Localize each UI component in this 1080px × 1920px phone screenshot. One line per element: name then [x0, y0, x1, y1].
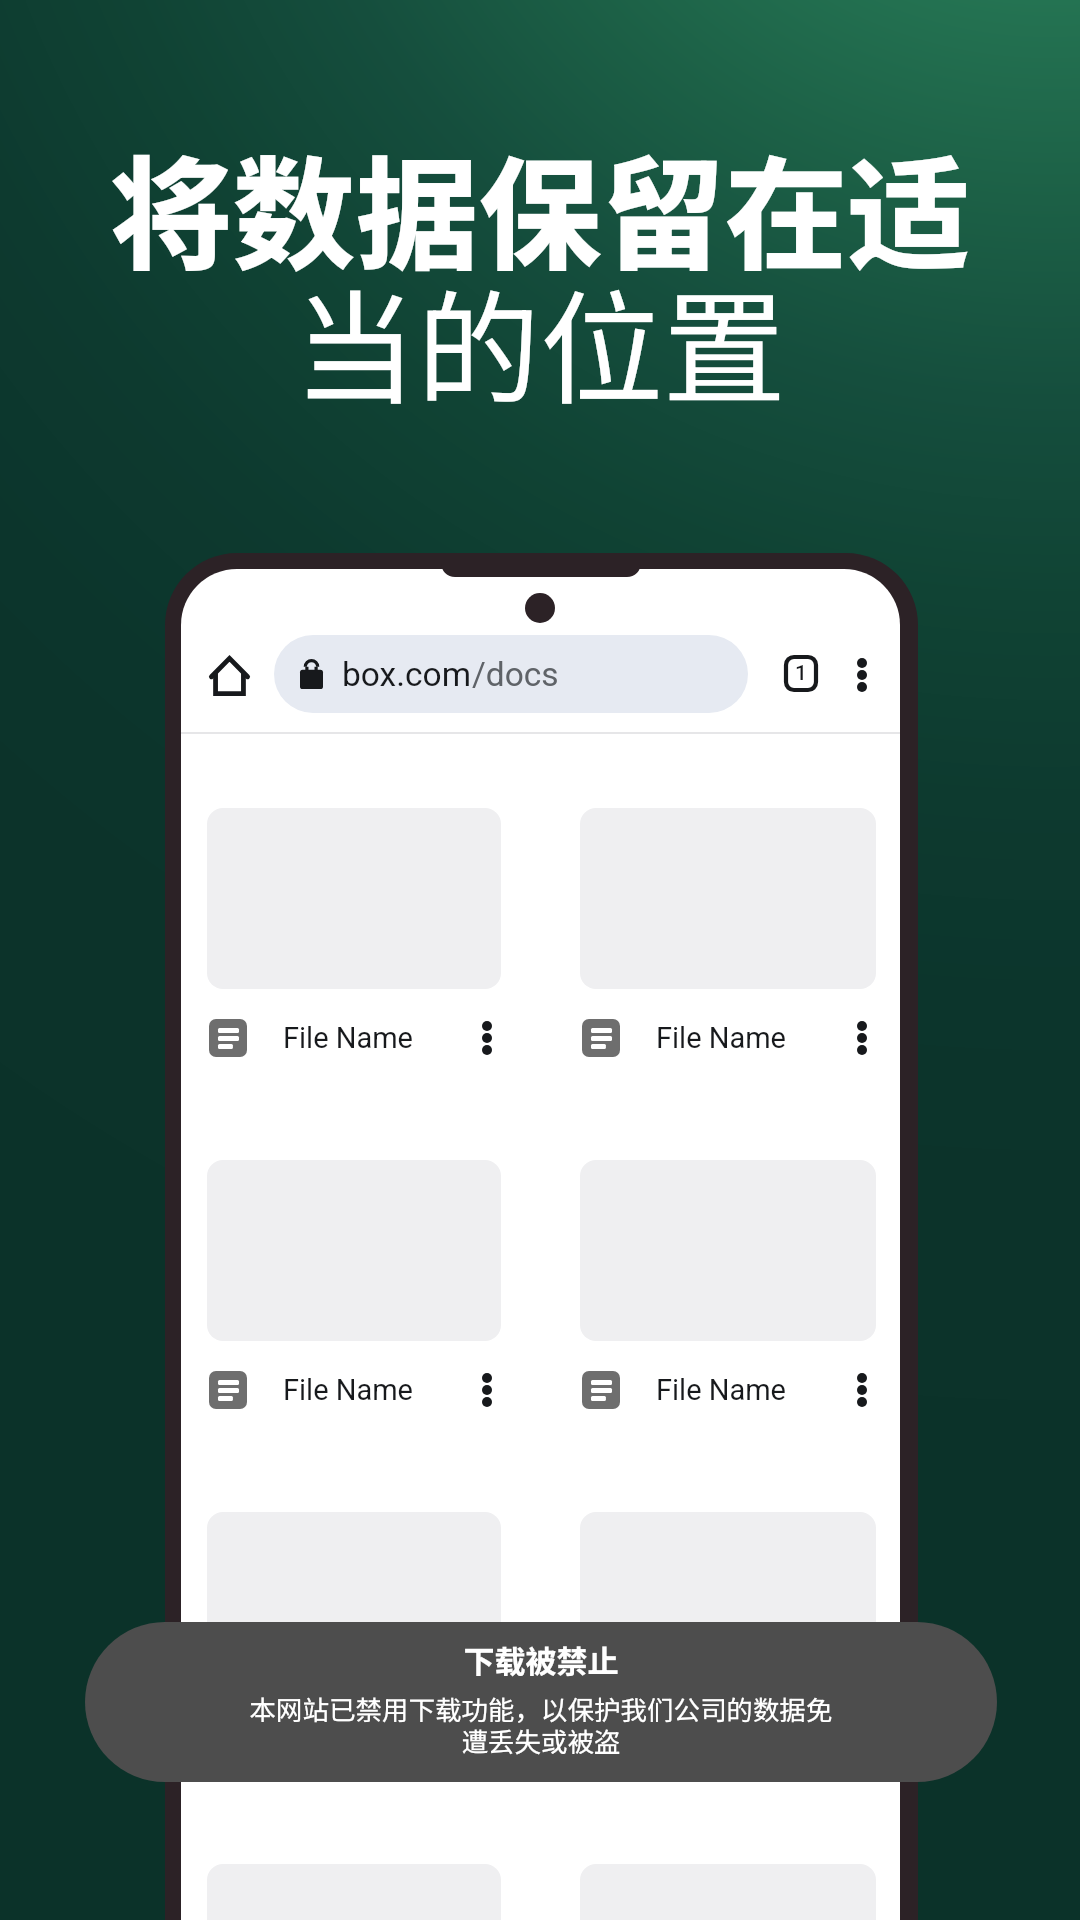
button[interactable]: File Name	[580, 808, 876, 1058]
button[interactable]: File Name	[207, 808, 501, 1058]
button[interactable]: File options	[842, 1018, 882, 1058]
button[interactable]: More options	[832, 645, 892, 705]
staticText: box.com	[342, 655, 472, 694]
staticText: /docs	[472, 655, 559, 694]
button[interactable]: File options	[467, 1018, 507, 1058]
staticText: 本网站已禁用下载功能，以保护我们公司的数据免 遭丢失或被盗	[85, 1689, 997, 1760]
staticText: File Name	[283, 1021, 413, 1055]
button[interactable]: 下载被禁止	[85, 1622, 997, 1782]
button[interactable]: File options	[467, 1722, 507, 1762]
staticText: File Name	[656, 1021, 786, 1055]
button[interactable]: Tabs	[771, 643, 831, 703]
button[interactable]: File Name	[207, 1512, 501, 1762]
staticText: File Name	[283, 1373, 413, 1407]
button[interactable]: File Name	[207, 1160, 501, 1410]
button[interactable]: Home	[192, 639, 266, 713]
staticText: 当的位置	[0, 251, 1080, 429]
staticText: 1	[795, 661, 807, 686]
button[interactable]: File Name	[580, 1160, 876, 1410]
button[interactable]: File options	[842, 1370, 882, 1410]
staticText: File Name	[656, 1373, 786, 1407]
staticText: 下载被禁止	[85, 1637, 997, 1682]
staticText: 将数据保留在适	[0, 117, 1080, 295]
button[interactable]: File options	[467, 1370, 507, 1410]
button[interactable]: File Name	[580, 1512, 876, 1762]
button[interactable]: box.com	[274, 635, 748, 713]
